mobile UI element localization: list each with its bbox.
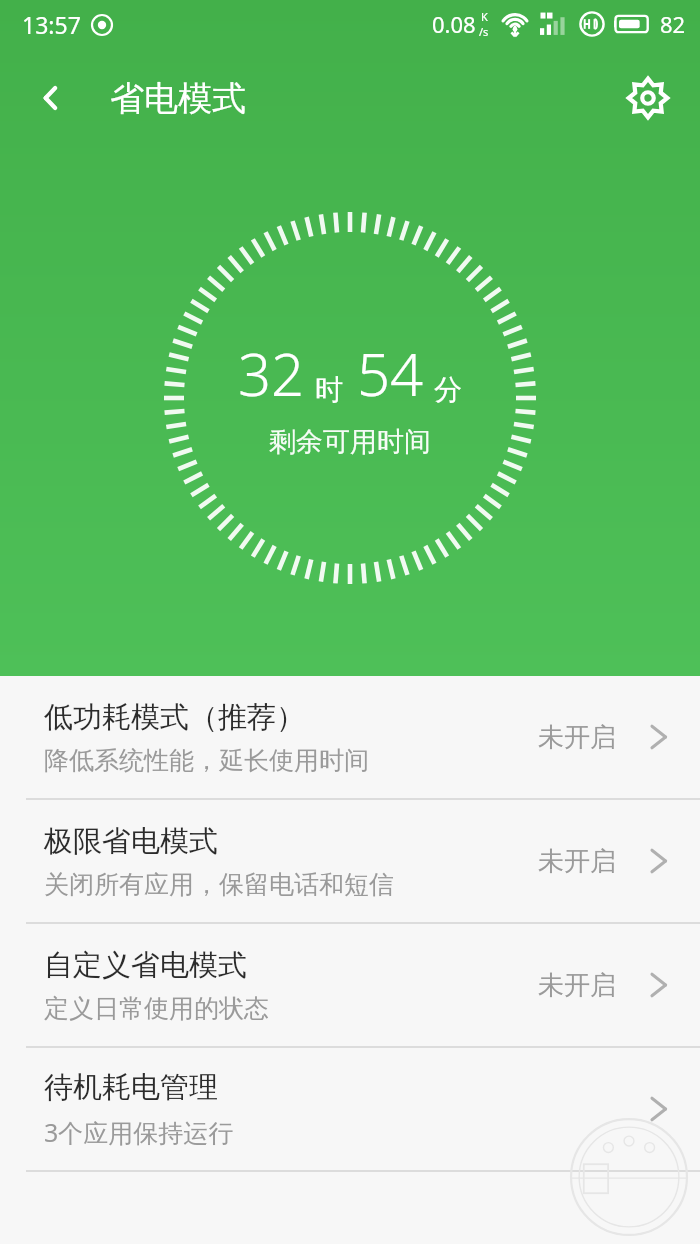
staticText: 剩余可用时间 <box>269 425 431 459</box>
staticText: 54 <box>357 334 424 413</box>
staticText: 13:57 <box>22 9 81 40</box>
staticText: 3个应用保持运行 <box>44 1115 234 1149</box>
button[interactable]: 低功耗模式（推荐） <box>0 676 700 798</box>
staticText: 关闭所有应用，保留电话和短信 <box>44 869 394 900</box>
staticText: K <box>481 9 488 24</box>
staticText: 0.08 <box>432 9 476 39</box>
staticText: /s <box>479 24 489 39</box>
staticText: 分 <box>434 372 462 407</box>
staticText: 未开启 <box>538 969 616 1002</box>
staticText: 低功耗模式（推荐） <box>44 699 305 736</box>
staticText: 82 <box>660 9 686 39</box>
button[interactable]: 待机耗电管理 <box>0 1048 700 1170</box>
button[interactable]: 自定义省电模式 <box>0 924 700 1046</box>
staticText: 时 <box>315 372 343 407</box>
button[interactable]: Settings <box>610 60 686 136</box>
staticText: 自定义省电模式 <box>44 947 247 984</box>
button[interactable]: Back <box>14 60 90 136</box>
staticText: 待机耗电管理 <box>44 1069 218 1106</box>
staticText: 未开启 <box>538 845 616 878</box>
staticText: 降低系统性能，延长使用时间 <box>44 745 369 776</box>
staticText: 32 <box>238 334 305 413</box>
button[interactable]: 极限省电模式 <box>0 800 700 922</box>
staticText: 极限省电模式 <box>44 823 218 860</box>
staticText: 未开启 <box>538 721 616 754</box>
staticText: 定义日常使用的状态 <box>44 993 269 1024</box>
staticText: 省电模式 <box>110 77 246 120</box>
